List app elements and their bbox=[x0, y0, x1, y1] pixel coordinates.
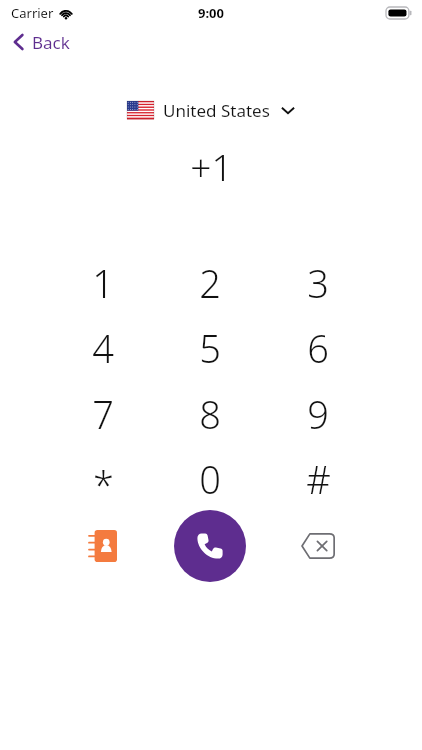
button[interactable]: United States bbox=[0, 95, 422, 125]
staticText: Carrier bbox=[11, 4, 54, 22]
staticText: 3 bbox=[307, 257, 329, 309]
button[interactable]: 1 bbox=[55, 252, 151, 314]
button[interactable]: Backspace bbox=[290, 522, 346, 570]
button[interactable]: Call bbox=[174, 510, 246, 582]
staticText: 0 bbox=[199, 453, 221, 505]
button[interactable]: 3 bbox=[270, 252, 366, 314]
staticText: 4 bbox=[92, 322, 114, 374]
staticText: 9:00 bbox=[198, 4, 224, 22]
staticText: 6 bbox=[307, 322, 329, 374]
staticText: 1 bbox=[92, 257, 114, 309]
button[interactable]: 9 bbox=[270, 383, 366, 445]
staticText: 5 bbox=[199, 322, 221, 374]
staticText: +1 bbox=[190, 141, 233, 191]
staticText: Back bbox=[32, 31, 70, 54]
staticText: 2 bbox=[199, 257, 221, 309]
staticText: United States bbox=[163, 99, 270, 122]
staticText: # bbox=[306, 453, 331, 505]
button[interactable]: 4 bbox=[55, 317, 151, 379]
button[interactable]: 2 bbox=[162, 252, 258, 314]
staticText: 7 bbox=[92, 388, 114, 440]
button[interactable]: * bbox=[55, 448, 151, 510]
staticText: * bbox=[93, 458, 114, 510]
button[interactable]: 0 bbox=[162, 448, 258, 510]
button[interactable]: # bbox=[270, 448, 366, 510]
button[interactable]: 8 bbox=[162, 383, 258, 445]
button[interactable]: Back bbox=[12, 28, 70, 56]
staticText: 9 bbox=[307, 388, 329, 440]
button[interactable]: 7 bbox=[55, 383, 151, 445]
staticText: 8 bbox=[199, 388, 221, 440]
button[interactable]: 6 bbox=[270, 317, 366, 379]
button[interactable]: 5 bbox=[162, 317, 258, 379]
button[interactable]: Contacts bbox=[77, 520, 129, 572]
